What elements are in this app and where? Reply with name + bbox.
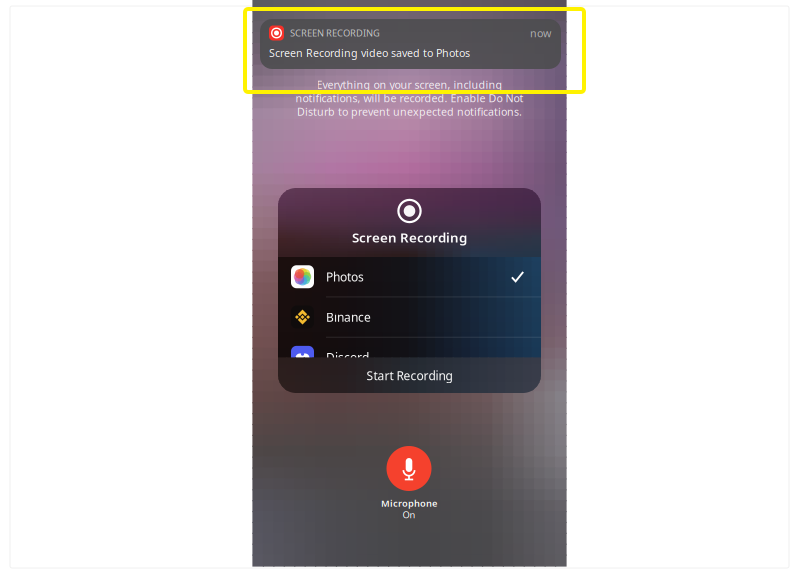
staticText: notifications, will be recorded. Enable … [295,91,523,105]
button[interactable]: Start Recording [278,358,541,393]
staticText: Photos [326,269,364,285]
button[interactable]: Discord [278,338,541,377]
staticText: Disturb to prevent unexpected notificati… [297,105,522,119]
staticText: Screen Recording [352,228,467,246]
staticText: On [402,508,415,521]
staticText: Everything on your screen, including [316,77,502,92]
staticText: Screen Recording video saved to Photos [269,46,470,60]
button[interactable]: Microphone [376,446,442,519]
button[interactable]: Binance [278,297,541,337]
staticText: Start Recording [366,367,452,383]
staticText: now [530,26,551,40]
staticText: Binance [326,309,371,325]
button[interactable]: SCREEN RECORDING [260,19,561,69]
staticText: Microphone [381,497,437,509]
staticText: SCREEN RECORDING [290,27,380,39]
staticText: Discord [326,349,369,365]
button[interactable]: Photos [278,257,541,296]
